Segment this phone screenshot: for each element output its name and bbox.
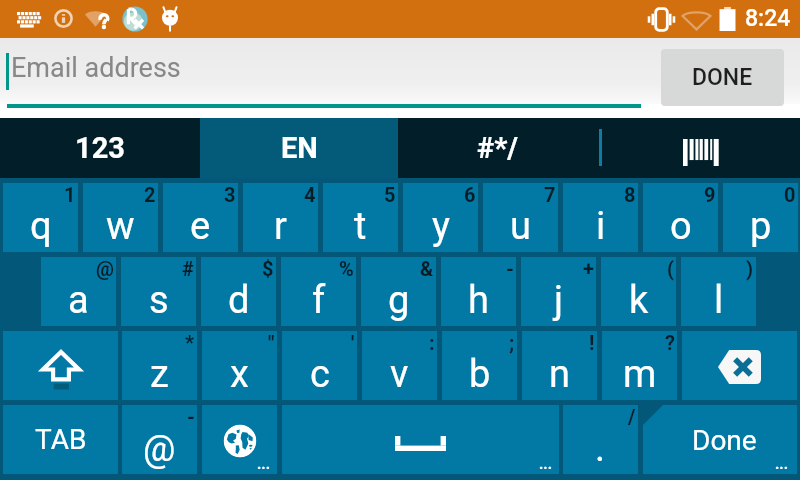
button[interactable]: b [442, 331, 517, 400]
staticText: $ [262, 257, 274, 280]
button[interactable]: g [361, 257, 436, 326]
staticText: q [30, 204, 52, 249]
staticText: d [228, 278, 250, 323]
button[interactable]: DONE [661, 49, 784, 106]
staticText: ; [509, 331, 515, 354]
button[interactable]: Backspace [682, 331, 797, 400]
staticText: ) [746, 257, 754, 280]
button[interactable]: v [362, 331, 437, 400]
button[interactable]: q [3, 183, 78, 252]
staticText: #*/ [477, 131, 519, 165]
staticText: 8:24 [745, 5, 791, 32]
staticText: n [549, 352, 570, 397]
staticText: x [230, 352, 249, 397]
staticText: ( [667, 257, 674, 280]
staticText: o [670, 204, 692, 249]
button[interactable]: s [121, 257, 196, 326]
staticText: / [628, 405, 636, 428]
staticText: ... [257, 455, 271, 473]
staticText: i [596, 204, 606, 249]
button[interactable]: @ [122, 405, 197, 474]
staticText: j [554, 278, 564, 323]
staticText: b [469, 352, 491, 397]
button[interactable]: i [563, 183, 638, 252]
staticText: : [429, 331, 435, 354]
button[interactable]: w [83, 183, 158, 252]
staticText: . [595, 426, 606, 471]
staticText: * [185, 331, 195, 354]
button[interactable]: e [163, 183, 238, 252]
staticText: f [312, 278, 326, 323]
staticText: 0 [784, 183, 796, 206]
staticText: ? [665, 331, 675, 354]
button[interactable]: m [602, 331, 677, 400]
button[interactable]: h [441, 257, 516, 326]
staticText: t [354, 204, 367, 249]
staticText: r [274, 204, 287, 249]
staticText: + [583, 257, 594, 280]
staticText: y [432, 204, 450, 249]
button[interactable]: EN [200, 118, 398, 178]
button[interactable]: #*/ [398, 118, 598, 178]
staticText: h [468, 278, 489, 323]
staticText: % [339, 257, 354, 280]
staticText: c [310, 352, 330, 397]
button[interactable]: Space [282, 405, 559, 474]
staticText: l [714, 278, 724, 323]
staticText: ' [351, 331, 355, 354]
button[interactable]: 123 [0, 118, 200, 178]
staticText: 9 [704, 183, 716, 206]
staticText: 4 [304, 183, 316, 206]
button[interactable]: Barcode scanner [598, 118, 800, 178]
button[interactable]: a [41, 257, 116, 326]
staticText: # [182, 257, 194, 280]
staticText: u [510, 204, 531, 249]
button[interactable]: c [282, 331, 357, 400]
button[interactable]: . [563, 405, 638, 474]
staticText: Email address [11, 52, 181, 84]
staticText: 5 [384, 183, 396, 206]
staticText: ... [539, 455, 553, 473]
staticText: 123 [75, 131, 125, 165]
staticText: DONE [692, 64, 753, 91]
staticText: 6 [464, 183, 476, 206]
button[interactable]: y [403, 183, 478, 252]
button[interactable]: d [201, 257, 276, 326]
staticText: g [388, 278, 410, 323]
button[interactable]: t [323, 183, 398, 252]
button[interactable]: TAB [3, 405, 118, 474]
staticText: 2 [144, 183, 156, 206]
staticText: @ [143, 428, 176, 470]
button[interactable]: z [122, 331, 197, 400]
staticText: EN [281, 131, 318, 165]
staticText: & [420, 257, 434, 280]
button[interactable]: k [601, 257, 676, 326]
staticText: p [750, 204, 772, 249]
staticText: k [629, 278, 649, 323]
button[interactable]: l [681, 257, 756, 326]
button[interactable]: u [483, 183, 558, 252]
button[interactable]: x [202, 331, 277, 400]
button[interactable]: Shift [3, 331, 118, 400]
staticText: 3 [224, 183, 236, 206]
button[interactable]: j [521, 257, 596, 326]
button[interactable]: o [643, 183, 718, 252]
button[interactable]: Done [643, 405, 797, 474]
staticText: Done [692, 424, 757, 457]
button[interactable]: Change language [202, 405, 277, 474]
staticText: ... [775, 455, 789, 473]
staticText: 1 [64, 183, 76, 206]
button[interactable]: f [281, 257, 356, 326]
button[interactable]: n [522, 331, 597, 400]
staticText: a [68, 278, 89, 323]
button[interactable]: p [723, 183, 798, 252]
staticText: v [390, 352, 409, 397]
staticText: z [150, 352, 169, 397]
staticText: @ [96, 257, 114, 280]
staticText: w [106, 204, 135, 249]
button[interactable]: r [243, 183, 318, 252]
staticText: 7 [544, 183, 556, 206]
staticText: - [506, 257, 514, 280]
staticText: 8 [624, 183, 636, 206]
staticText: TAB [35, 423, 87, 456]
